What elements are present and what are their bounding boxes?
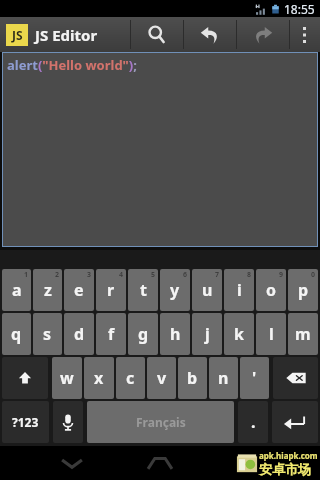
staticText: apk.hiapk.com [259,450,318,461]
button[interactable]: g [128,313,158,355]
staticText: t [140,279,147,301]
staticText: 6 [183,270,188,280]
staticText: d [74,323,85,345]
button[interactable]: Hide keyboard [54,446,90,480]
button[interactable]: JS [0,17,130,52]
staticText: a [12,279,22,301]
staticText: alert("Hello world"); [7,56,137,74]
button[interactable]: . [238,401,268,443]
button[interactable]: Undo [184,17,236,52]
button[interactable]: f [96,313,126,355]
button[interactable]: shift [2,357,48,399]
button[interactable]: y [160,269,190,311]
staticText: 5 [151,270,156,280]
staticText: 1 [24,270,29,280]
staticText: l [269,323,274,345]
button[interactable]: n [209,357,238,399]
button[interactable]: t [128,269,158,311]
button[interactable]: ' [240,357,269,399]
staticText: z [44,279,52,301]
button[interactable]: l [256,313,286,355]
staticText: k [234,323,244,345]
button[interactable]: x [84,357,114,399]
staticText: r [107,279,115,301]
staticText: j [205,323,210,345]
button[interactable]: d [64,313,94,355]
button[interactable]: Search [131,17,183,52]
staticText: g [138,323,149,345]
button[interactable]: Redo [237,17,289,52]
staticText: 8 [247,270,252,280]
staticText: Français [136,414,186,430]
button[interactable]: k [224,313,254,355]
button[interactable]: s [33,313,62,355]
button[interactable]: o [256,269,286,311]
staticText: 9 [279,270,284,280]
staticText: o [266,279,277,301]
button[interactable]: u [192,269,222,311]
staticText: ?123 [12,414,39,430]
button[interactable]: v [147,357,176,399]
staticText: h [170,323,181,345]
button[interactable]: Français [87,401,234,443]
button[interactable]: p [288,269,318,311]
button[interactable]: z [33,269,62,311]
staticText: s [43,323,52,345]
staticText: c [126,367,135,389]
staticText: JS Editor [35,25,98,45]
staticText: m [295,323,311,345]
button[interactable]: w [52,357,82,399]
staticText: ' [252,367,257,389]
staticText: JS [12,27,23,43]
staticText: b [187,367,198,389]
staticText: p [298,279,309,301]
staticText: 18:55 [284,1,315,17]
staticText: 安卓市场 [259,461,311,477]
button[interactable]: ?123 [2,401,49,443]
staticText: 2 [55,270,60,280]
button[interactable]: q [2,313,31,355]
staticText: n [218,367,229,389]
button[interactable]: c [116,357,145,399]
button[interactable]: mic [53,401,83,443]
staticText: i [237,279,242,301]
staticText: e [74,279,84,301]
button[interactable]: a [2,269,31,311]
button[interactable]: m [288,313,318,355]
button[interactable]: alert("Hello world"); [2,52,318,247]
button[interactable]: del [273,357,318,399]
staticText: 3 [87,270,92,280]
staticText: 4 [119,270,124,280]
staticText: y [170,279,180,301]
button[interactable]: i [224,269,254,311]
button[interactable]: r [96,269,126,311]
button[interactable]: h [160,313,190,355]
staticText: x [94,367,104,389]
staticText: 7 [215,270,220,280]
staticText: 0 [311,270,316,280]
button[interactable]: Home [140,446,180,480]
staticText: q [11,323,22,345]
button[interactable]: More options [290,17,320,52]
staticText: f [108,323,115,345]
button[interactable]: enter [272,401,318,443]
staticText: v [157,367,167,389]
button[interactable]: b [178,357,207,399]
staticText: . [251,411,256,433]
staticText: w [60,367,74,389]
staticText: u [202,279,213,301]
button[interactable]: e [64,269,94,311]
button[interactable]: j [192,313,222,355]
